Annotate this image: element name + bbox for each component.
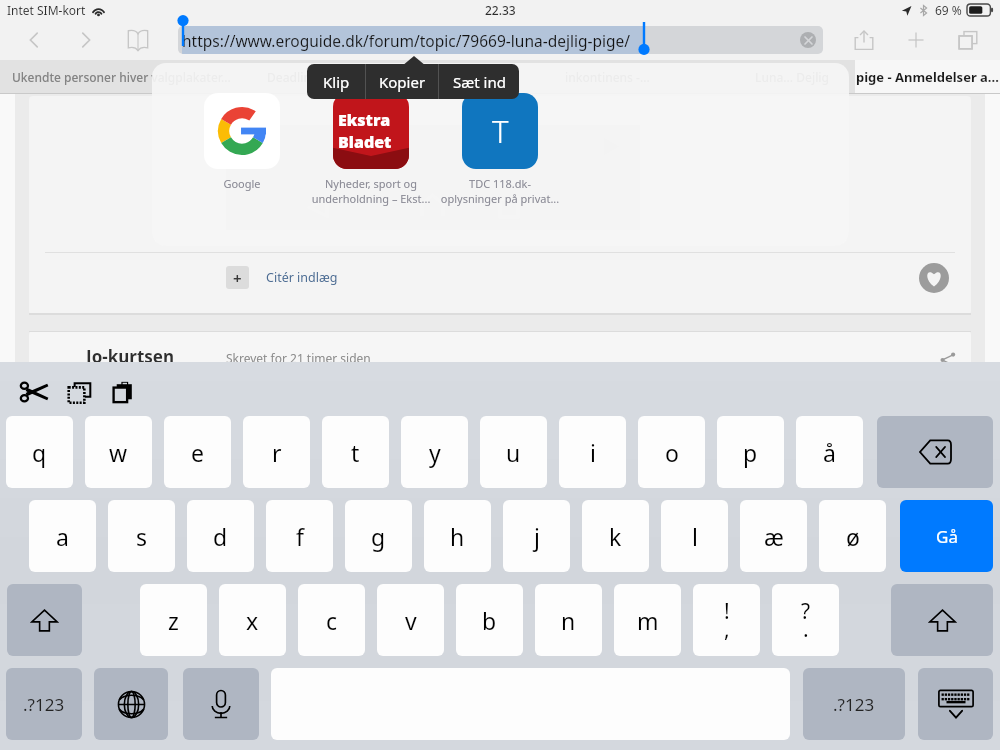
staticText: u xyxy=(506,437,521,468)
staticText: f xyxy=(296,521,304,552)
button[interactable]: Back xyxy=(14,20,54,60)
staticText: d xyxy=(213,521,228,552)
button[interactable]: q xyxy=(6,416,73,488)
button[interactable]: ! xyxy=(693,584,760,656)
button[interactable]: Dictate xyxy=(183,668,259,740)
button[interactable]: Like xyxy=(919,263,949,293)
button[interactable]: l xyxy=(661,500,728,572)
staticText: z xyxy=(168,605,179,636)
button[interactable]: Bookmarks xyxy=(118,20,158,60)
staticText: w xyxy=(109,437,128,468)
button[interactable]: Deadline om inlækage hos mænd, xyxy=(243,60,486,93)
button[interactable]: Shift xyxy=(7,584,82,656)
button[interactable]: ? xyxy=(772,584,839,656)
staticText: m xyxy=(637,605,659,636)
button[interactable]: Forward xyxy=(66,20,106,60)
staticText: ø xyxy=(846,521,860,552)
button[interactable]: Switch language xyxy=(94,668,168,740)
button[interactable]: v xyxy=(377,584,444,656)
staticText: + xyxy=(233,268,242,288)
button[interactable]: i xyxy=(559,416,626,488)
button[interactable]: n xyxy=(535,584,602,656)
button[interactable]: Luna... Dejlig xyxy=(729,60,855,93)
button[interactable]: Hide keyboard xyxy=(918,668,993,740)
staticText: Citér indlæg xyxy=(266,269,338,286)
staticText: l xyxy=(692,521,698,552)
button[interactable]: pige - Anmeldelser a... xyxy=(855,60,1000,93)
staticText: Jo-kurtsen xyxy=(86,345,174,368)
button[interactable]: c xyxy=(298,584,365,656)
button[interactable]: s xyxy=(108,500,175,572)
button[interactable]: u xyxy=(480,416,547,488)
staticText: Kopier xyxy=(379,72,426,92)
staticText: Ekstra xyxy=(338,109,391,131)
button[interactable]: å xyxy=(796,416,863,488)
button[interactable]: j xyxy=(503,500,570,572)
button[interactable]: b xyxy=(456,584,523,656)
staticText: p xyxy=(743,437,758,468)
button[interactable]: Share xyxy=(844,20,884,60)
staticText: Ukendte personer hiver valgplakater... xyxy=(12,69,231,85)
staticText: t xyxy=(351,437,360,468)
button[interactable]: ø xyxy=(819,500,886,572)
button[interactable]: New tab xyxy=(896,20,936,60)
staticText: Intet SIM-kort xyxy=(7,2,86,18)
button[interactable]: Ekstra xyxy=(306,93,436,206)
button[interactable]: .?123 xyxy=(803,668,905,740)
button[interactable]: a xyxy=(29,500,96,572)
button[interactable]: m xyxy=(614,584,681,656)
button[interactable]: x xyxy=(219,584,286,656)
button[interactable]: d xyxy=(187,500,254,572)
button[interactable]: t xyxy=(322,416,389,488)
button[interactable]: g xyxy=(345,500,412,572)
staticText: y xyxy=(429,437,441,468)
button[interactable]: Go xyxy=(900,500,993,572)
staticText: 69 % xyxy=(935,2,962,18)
button[interactable]: https://www.eroguide.dk/forum/topic/7966… xyxy=(178,26,823,54)
staticText: pige - Anmeldelser a... xyxy=(856,68,999,86)
button[interactable]: Backspace xyxy=(877,416,993,488)
button[interactable]: r xyxy=(243,416,310,488)
button[interactable]: Shift xyxy=(891,584,993,656)
staticText: , xyxy=(724,615,730,644)
button[interactable]: h xyxy=(424,500,491,572)
staticText: b xyxy=(482,605,497,636)
staticText: . xyxy=(803,615,809,644)
staticText: Klip xyxy=(323,72,350,92)
button[interactable]: p xyxy=(717,416,784,488)
button[interactable]: Kopier xyxy=(366,64,438,99)
button[interactable]: Paste xyxy=(104,372,144,412)
staticText: g xyxy=(371,521,386,552)
button[interactable]: Clear xyxy=(800,32,816,48)
button[interactable]: Tabs xyxy=(948,20,988,60)
button[interactable]: .?123 xyxy=(6,668,82,740)
button[interactable]: inkontinens -... xyxy=(486,60,729,93)
button[interactable]: æ xyxy=(740,500,807,572)
button[interactable]: Klip xyxy=(307,64,365,99)
button[interactable]: z xyxy=(140,584,207,656)
button[interactable]: Copy xyxy=(59,372,99,412)
button[interactable]: Google xyxy=(177,93,307,191)
button[interactable]: + xyxy=(226,266,338,289)
button[interactable]: Ukendte personer hiver valgplakater... xyxy=(0,60,243,93)
button[interactable]: o xyxy=(638,416,705,488)
button[interactable]: y xyxy=(401,416,468,488)
button[interactable]: e xyxy=(164,416,231,488)
staticText: a xyxy=(56,521,69,552)
staticText: Skrevet for 21 timer siden xyxy=(226,350,371,366)
button[interactable]: Sæt ind xyxy=(439,64,519,99)
staticText: Gå xyxy=(936,525,958,548)
button[interactable]: k xyxy=(582,500,649,572)
button[interactable]: w xyxy=(85,416,152,488)
staticText: T xyxy=(492,110,509,152)
button[interactable]: Cut xyxy=(14,372,54,412)
staticText: h xyxy=(450,521,465,552)
button[interactable]: f xyxy=(266,500,333,572)
staticText: ? xyxy=(801,597,811,626)
staticText: s xyxy=(136,521,148,552)
staticText: Sæt ind xyxy=(453,72,506,92)
button[interactable]: T xyxy=(435,93,565,206)
staticText: q xyxy=(32,437,47,468)
